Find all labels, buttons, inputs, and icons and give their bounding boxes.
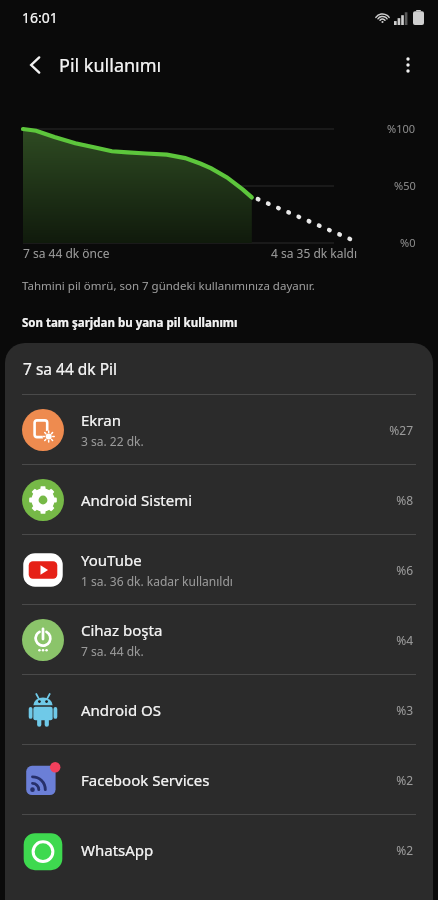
- button[interactable]: Android Sistemi: [5, 465, 433, 534]
- staticText: Ekran: [81, 410, 121, 430]
- button[interactable]: Facebook Services: [5, 745, 433, 814]
- staticText: 7 sa. 44 dk.: [81, 643, 144, 659]
- staticText: %8: [396, 492, 413, 508]
- staticText: Android Sistemi: [81, 490, 193, 510]
- staticText: %2: [396, 772, 413, 788]
- button[interactable]: YouTube: [5, 535, 433, 604]
- button[interactable]: Geri: [14, 43, 58, 87]
- staticText: Cihaz boşta: [81, 620, 163, 640]
- staticText: Facebook Services: [81, 770, 210, 790]
- staticText: Son tam şarjdan bu yana pil kullanımı: [22, 315, 238, 331]
- staticText: %6: [396, 562, 413, 578]
- staticText: %0: [400, 235, 416, 250]
- button[interactable]: Daha fazla seçenek: [386, 43, 430, 87]
- staticText: %2: [396, 842, 413, 858]
- button[interactable]: Cihaz boşta: [5, 605, 433, 674]
- staticText: Tahmini pil ömrü, son 7 gündeki kullanım…: [22, 278, 315, 294]
- staticText: YouTube: [81, 550, 142, 570]
- staticText: WhatsApp: [81, 840, 154, 860]
- button[interactable]: Android OS: [5, 675, 433, 744]
- button[interactable]: WhatsApp: [5, 815, 433, 884]
- staticText: Pil kullanımı: [59, 53, 162, 78]
- button[interactable]: Ekran: [5, 395, 433, 464]
- staticText: 4 sa 35 dk kaldı: [271, 245, 358, 261]
- staticText: 1 sa. 36 dk. kadar kullanıldı: [81, 573, 233, 589]
- staticText: 7 sa 44 dk önce: [23, 245, 110, 261]
- staticText: Android OS: [81, 700, 161, 720]
- staticText: %27: [389, 422, 413, 438]
- staticText: 16:01: [22, 8, 58, 27]
- staticText: %4: [396, 632, 413, 648]
- staticText: %100: [387, 121, 416, 136]
- staticText: %3: [396, 702, 413, 718]
- staticText: 7 sa 44 dk Pil: [23, 358, 118, 379]
- staticText: %50: [394, 178, 416, 193]
- staticText: 3 sa. 22 dk.: [81, 433, 144, 449]
